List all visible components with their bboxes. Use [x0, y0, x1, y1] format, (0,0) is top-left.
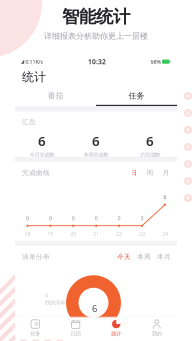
button[interactable]: 日历 [55, 315, 96, 341]
button[interactable]: 我的 [136, 315, 177, 341]
staticText: 24 [162, 230, 168, 237]
button[interactable]: 日 [126, 168, 142, 178]
staticText: 本周完成数 [83, 152, 108, 158]
staticText: 6 [92, 302, 97, 315]
staticText: 0 [118, 215, 121, 222]
staticText: 6 [163, 194, 166, 201]
staticText: 18 [24, 230, 30, 237]
staticText: 0 [49, 215, 52, 222]
staticText: 6 [45, 292, 48, 299]
staticText: 23 [139, 230, 145, 237]
button[interactable]: 本月 [154, 252, 174, 262]
button[interactable]: 今天 [114, 252, 134, 262]
button[interactable]: 统计 [96, 315, 136, 341]
staticText: 6 [146, 132, 154, 150]
staticText: 总完成数 [140, 152, 160, 158]
staticText: 6 [38, 132, 46, 150]
staticText: 今日完成数 [29, 152, 54, 158]
button[interactable]: 周 [142, 168, 158, 178]
staticText: 0 [95, 215, 98, 222]
staticText: 周 [146, 169, 153, 177]
staticText: 今天 [117, 253, 131, 261]
staticText: 19 [47, 230, 53, 237]
staticText: 番茄 [47, 91, 63, 101]
staticText: 6 [92, 132, 100, 150]
staticText: 统计 [111, 330, 121, 337]
staticText: 任务 [30, 330, 40, 337]
button[interactable]: 番茄 [15, 86, 96, 106]
staticText: 任务 [128, 91, 144, 101]
staticText: 统计 [22, 70, 46, 84]
button[interactable]: 任务 [96, 86, 177, 106]
staticText: 清单分布 [22, 253, 50, 261]
staticText: 我的清单 [45, 299, 65, 306]
staticText: 智能统计 [62, 6, 130, 27]
staticText: 月 [162, 169, 169, 177]
staticText: 详细报表分析助你更上一层楼 [44, 31, 148, 41]
staticText: 完成曲线 [22, 169, 50, 177]
staticText: 日历 [71, 330, 81, 337]
staticText: 21 [93, 230, 99, 237]
staticText: 0 [26, 215, 29, 222]
staticText: 68% [151, 58, 161, 65]
staticText: 20 [70, 230, 76, 237]
staticText: 0.11K/s [24, 58, 43, 65]
staticText: 日 [130, 169, 137, 177]
staticText: 汇总 [22, 118, 36, 126]
staticText: 本周 [137, 253, 151, 261]
staticText: 我的 [152, 330, 162, 337]
staticText: 22 [116, 230, 122, 237]
button[interactable]: 任务 [15, 315, 55, 341]
staticText: 0 [72, 215, 75, 222]
staticText: 本月 [157, 253, 171, 261]
button[interactable]: 月 [158, 168, 174, 178]
staticText: 0 [140, 215, 143, 222]
staticText: 10:32 [88, 57, 106, 66]
button[interactable]: 本周 [134, 252, 154, 262]
